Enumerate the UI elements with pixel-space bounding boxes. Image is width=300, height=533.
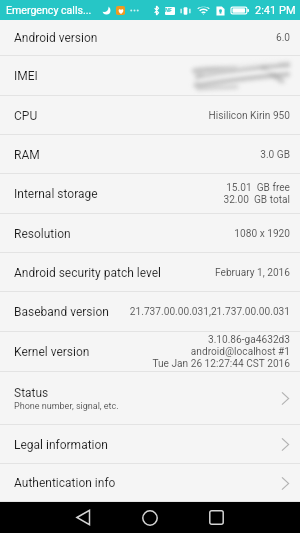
staticText: Phone number, signal, etc. xyxy=(14,401,119,412)
button[interactable]: Legal information xyxy=(0,425,300,464)
staticText: CPU xyxy=(14,109,38,123)
staticText: Baseband version xyxy=(14,305,109,319)
staticText: IMEI xyxy=(14,69,38,83)
staticText: Kernel version xyxy=(14,345,90,359)
staticText: android@localhost #1 xyxy=(190,346,290,358)
staticText: Internal storage xyxy=(14,187,98,201)
button[interactable]: Android version xyxy=(0,20,300,56)
staticText: 32.00 GB total xyxy=(223,194,290,206)
button[interactable]: IMEI xyxy=(0,56,300,96)
staticText: 15.01 GB free xyxy=(226,182,290,194)
button[interactable]: Resolution xyxy=(0,214,300,253)
staticText: Hisilicon Kirin 950 xyxy=(208,110,290,122)
staticText: 6.0 xyxy=(275,32,290,44)
button[interactable]: Android security patch level xyxy=(0,253,300,292)
staticText: Tue Jan 26 12:27:44 CST 2016 xyxy=(152,358,290,370)
staticText: February 1, 2016 xyxy=(215,267,290,279)
button[interactable]: CPU xyxy=(0,96,300,135)
staticText: 21.737.00.00.031,21.737.00.00.031 xyxy=(129,306,290,318)
staticText: Android security patch level xyxy=(14,266,161,280)
staticText: Android version xyxy=(14,31,98,45)
staticText: Status xyxy=(14,386,49,400)
button[interactable]: Kernel version xyxy=(0,332,300,372)
staticText: Legal information xyxy=(14,438,108,452)
staticText: 1080 x 1920 xyxy=(234,228,290,240)
staticText: Emergency calls... xyxy=(6,4,92,16)
button[interactable]: Recent apps xyxy=(193,502,239,533)
staticText: RAM xyxy=(14,148,40,162)
button[interactable]: RAM xyxy=(0,135,300,174)
staticText: 2:41 PM xyxy=(255,4,296,17)
button[interactable]: Authentication info xyxy=(0,464,300,502)
button[interactable]: Home xyxy=(127,502,173,533)
staticText: NFC xyxy=(165,7,175,15)
staticText: Resolution xyxy=(14,227,71,241)
button[interactable]: Status xyxy=(0,372,300,425)
button[interactable]: Back xyxy=(60,502,106,533)
button[interactable]: Baseband version xyxy=(0,292,300,332)
button[interactable]: Internal storage xyxy=(0,174,300,214)
staticText: 3.10.86-ga4632d3 xyxy=(207,334,290,346)
staticText: Authentication info xyxy=(14,476,116,490)
staticText: 3.0 GB xyxy=(260,149,290,161)
